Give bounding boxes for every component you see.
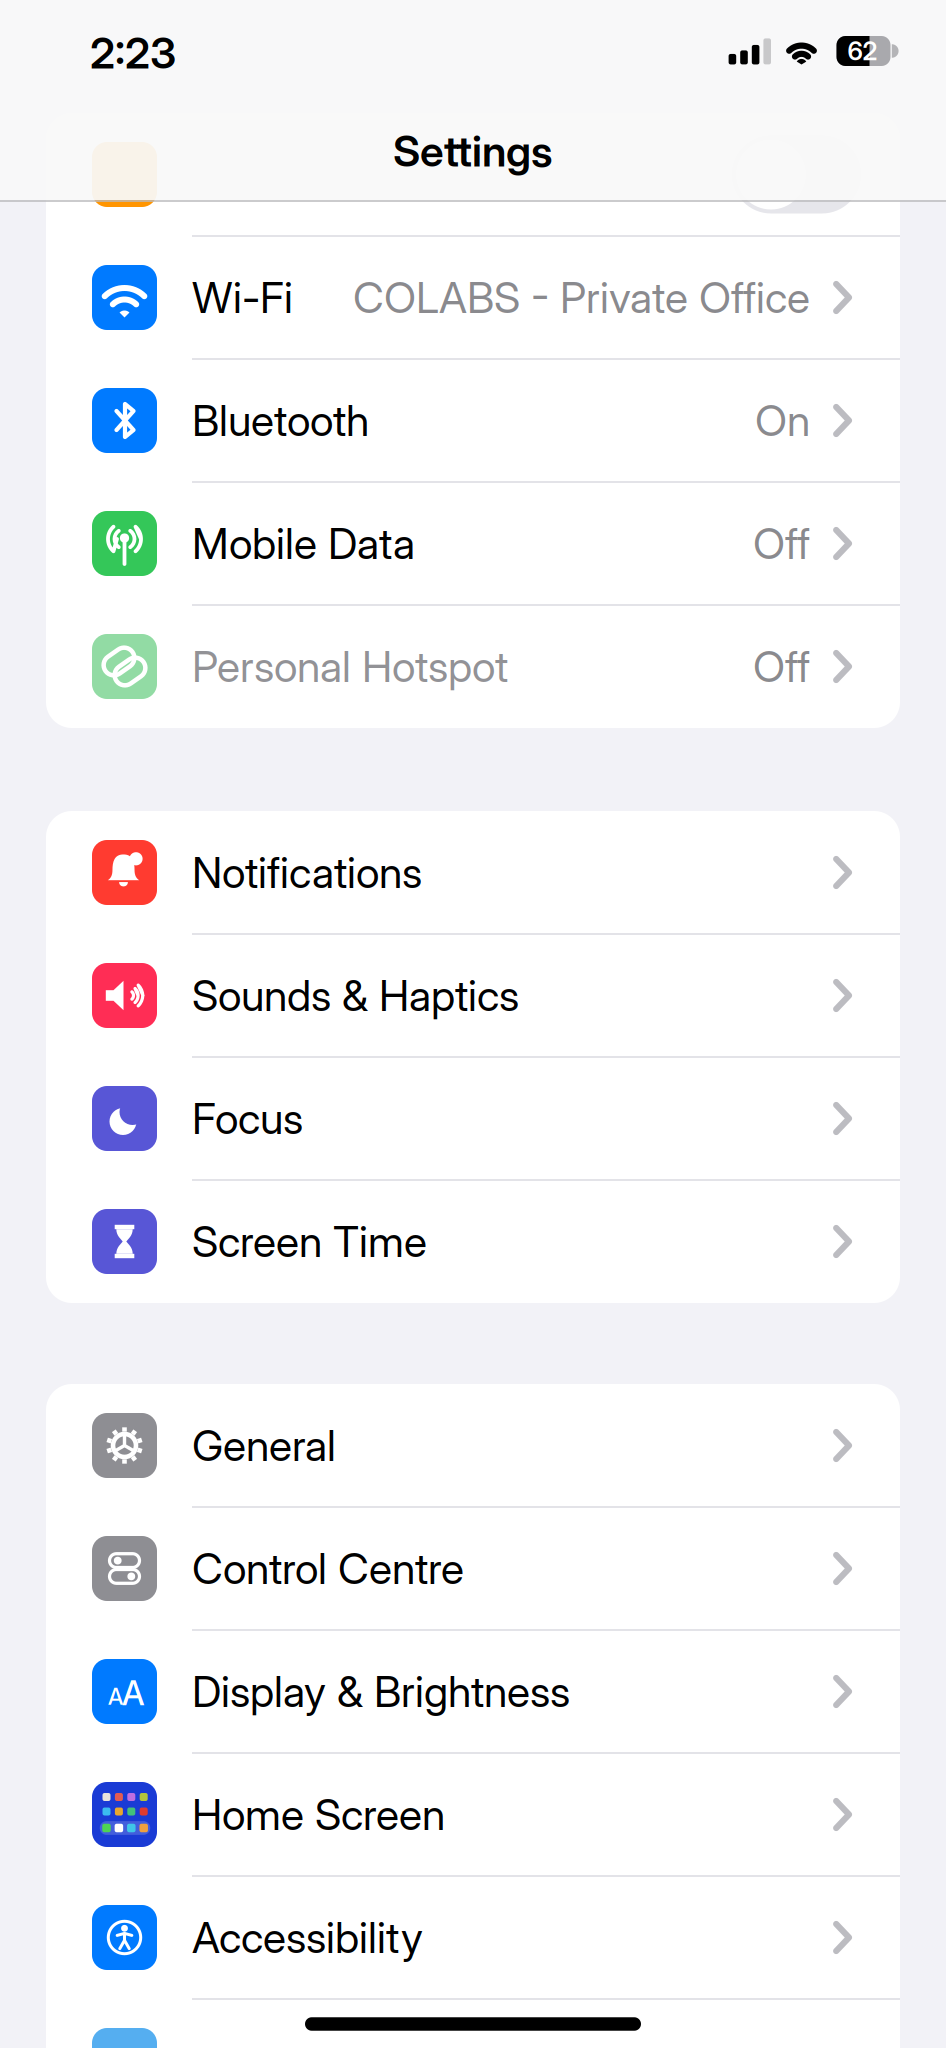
staticText: 62 bbox=[847, 36, 877, 66]
button[interactable]: Screen Time bbox=[46, 1180, 900, 1303]
staticText: A bbox=[108, 1683, 123, 1710]
button[interactable]: Mobile Data bbox=[46, 482, 900, 605]
button[interactable]: Focus bbox=[46, 1057, 900, 1180]
staticText: Sounds & Haptics bbox=[192, 970, 519, 1021]
button[interactable]: Aeroplane Mode bbox=[46, 113, 900, 236]
staticText: Display & Brightness bbox=[192, 1666, 570, 1717]
staticText: Bluetooth bbox=[192, 395, 369, 446]
button[interactable]: Home Screen bbox=[46, 1753, 900, 1876]
button[interactable]: Notifications bbox=[46, 811, 900, 934]
staticText: Mobile Data bbox=[192, 518, 415, 569]
button[interactable]: Wi-Fi bbox=[46, 236, 900, 359]
staticText: 2:23 bbox=[90, 28, 176, 78]
staticText: Wi-Fi bbox=[192, 272, 293, 323]
staticText: Home Screen bbox=[192, 1789, 445, 1840]
staticText: General bbox=[192, 1420, 336, 1471]
button[interactable]: General bbox=[46, 1384, 900, 1507]
button[interactable]: Sounds & Haptics bbox=[46, 934, 900, 1057]
staticText: Personal Hotspot bbox=[192, 641, 508, 692]
button[interactable]: Accessibility bbox=[46, 1876, 900, 1999]
staticText: On bbox=[755, 395, 810, 446]
button[interactable]: Personal Hotspot bbox=[46, 605, 900, 728]
staticText: Accessibility bbox=[192, 1912, 423, 1963]
staticText: Notifications bbox=[192, 847, 422, 898]
staticText: Screen Time bbox=[192, 1216, 427, 1267]
staticText: Settings bbox=[393, 126, 553, 176]
button[interactable]: Control Centre bbox=[46, 1507, 900, 1630]
staticText: Off bbox=[753, 518, 810, 569]
button[interactable]: Wallpaper bbox=[92, 2028, 157, 2048]
staticText: COLABS - Private Office bbox=[353, 272, 810, 323]
button[interactable]: Bluetooth bbox=[46, 359, 900, 482]
staticText: Focus bbox=[192, 1093, 303, 1144]
button[interactable]: A bbox=[46, 1630, 900, 1753]
staticText: Control Centre bbox=[192, 1543, 464, 1594]
staticText: A bbox=[122, 1673, 144, 1713]
staticText: Off bbox=[753, 641, 810, 692]
